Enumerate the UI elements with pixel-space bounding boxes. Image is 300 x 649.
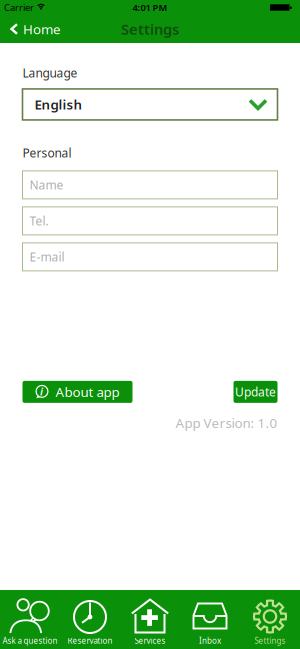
- staticText: Settings: [254, 635, 285, 646]
- staticText: Settings: [121, 19, 179, 39]
- button[interactable]: E-mail: [22, 243, 277, 271]
- staticText: E-mail: [29, 249, 64, 265]
- staticText: About app: [55, 383, 119, 401]
- staticText: App Version: 1.0: [175, 414, 277, 432]
- staticText: Personal: [22, 145, 71, 161]
- button[interactable]: Inbox: [180, 590, 240, 649]
- button[interactable]: i: [22, 381, 132, 403]
- staticText: Update: [235, 384, 276, 400]
- button[interactable]: Ask a question: [0, 590, 60, 649]
- staticText: Language: [22, 65, 77, 81]
- staticText: Tel.: [29, 213, 48, 229]
- staticText: Name: [29, 177, 63, 193]
- button[interactable]: Services: [120, 590, 180, 649]
- button[interactable]: Tel.: [22, 207, 277, 235]
- staticText: 4:01 PM: [132, 1, 167, 14]
- staticText: English: [34, 96, 82, 113]
- button[interactable]: Update: [233, 381, 277, 403]
- staticText: Ask a question: [2, 635, 57, 646]
- staticText: Inbox: [199, 635, 221, 646]
- button[interactable]: English: [22, 89, 277, 120]
- button[interactable]: Settings: [240, 590, 300, 649]
- button[interactable]: Reservation: [60, 590, 120, 649]
- staticText: Home: [23, 20, 61, 38]
- staticText: i: [40, 384, 43, 398]
- staticText: Carrier: [4, 1, 34, 14]
- staticText: Reservation: [67, 635, 112, 646]
- button[interactable]: Name: [22, 171, 277, 199]
- button[interactable]: Back to Home: [0, 20, 61, 38]
- staticText: Services: [134, 635, 165, 646]
